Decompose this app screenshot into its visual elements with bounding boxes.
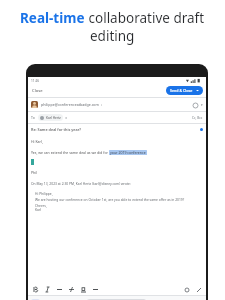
button[interactable]: Send & Close xyxy=(166,86,203,95)
button[interactable]: Bold xyxy=(31,285,40,294)
button[interactable]: Link xyxy=(79,285,88,294)
button[interactable]: Attach xyxy=(191,101,199,109)
button[interactable]: Account xyxy=(31,299,40,300)
staticText: ▾ xyxy=(201,103,203,107)
staticText: Yes, we can extend the same deal as we d… xyxy=(31,150,109,155)
button[interactable]: Strikethrough xyxy=(67,285,76,294)
staticText: philippe@conferenceatbadge.com xyxy=(41,102,99,107)
staticText: On May 13, 2023 at 2:30 PM, Karl Hertz (… xyxy=(31,181,131,185)
staticText: 11:26 xyxy=(31,79,40,83)
staticText: We are hosting our conference on October… xyxy=(35,197,185,201)
staticText: Send & Close xyxy=(170,88,193,93)
staticText: Real-time xyxy=(20,9,85,27)
staticText: editing xyxy=(90,27,135,45)
button[interactable]: Karl Hertz xyxy=(38,114,63,121)
staticText: Karl Hertz xyxy=(46,116,61,120)
staticText: Close xyxy=(32,88,43,94)
staticText: Cheers, xyxy=(35,203,47,207)
staticText: ✕ xyxy=(65,116,68,119)
button[interactable]: Italic xyxy=(43,285,52,294)
staticText: › xyxy=(101,102,103,107)
staticText: Phil xyxy=(31,170,38,175)
staticText: collaborative draft xyxy=(85,9,205,27)
button[interactable]: Edit xyxy=(194,285,203,294)
staticText: your 2019 conference xyxy=(110,150,146,155)
staticText: Hi Philippe, xyxy=(35,191,53,195)
button[interactable]: Underline xyxy=(55,285,64,294)
button[interactable]: List xyxy=(91,285,100,294)
staticText: Re: Same deal for this year? xyxy=(31,127,81,132)
staticText: Karl xyxy=(35,207,42,211)
button[interactable]: Close xyxy=(31,88,44,94)
staticText: Cc, Bcc xyxy=(192,116,203,120)
button[interactable]: Cc, Bcc xyxy=(192,116,203,120)
staticText: To xyxy=(31,115,35,120)
button[interactable]: History xyxy=(182,285,191,294)
button[interactable]: https://www.lapresse.ca/internatio... xyxy=(85,299,148,300)
staticText: Hi Karl, xyxy=(31,139,43,144)
